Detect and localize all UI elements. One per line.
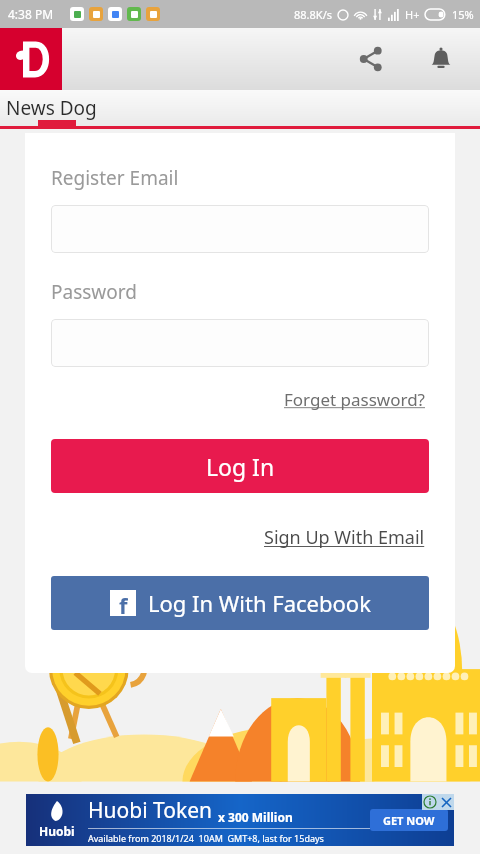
button[interactable]: Huobi [26,794,454,846]
staticText: GET NOW [383,813,435,828]
staticText: Password [51,279,137,305]
button[interactable]: Share [354,42,388,76]
button[interactable]: NewsDog home [0,28,62,90]
button[interactable]: Log In [51,439,429,493]
button[interactable]: Notifications [424,42,458,76]
staticText: H+ [405,7,420,22]
staticText: Log In [206,451,275,482]
button[interactable]: f [51,576,429,630]
button[interactable]: GET NOW [370,809,448,831]
staticText: Huobi [39,823,75,839]
button[interactable]: Ad info [422,794,438,810]
button[interactable]: News Dog [6,90,97,126]
staticText: 15% [452,7,474,22]
staticText: 88.8K/s [294,7,332,22]
button[interactable] [51,319,429,367]
staticText: Log In With Facebook [148,588,371,618]
staticText: Register Email [51,165,179,191]
staticText: 4:38 PM [8,6,54,22]
staticText: x 300 Million [218,809,293,825]
button[interactable]: Forget password? [280,384,429,415]
staticText: Forget password? [284,388,425,411]
staticText: Available from 2018/1/24 10AM GMT+8, las… [88,832,324,844]
staticText: News Dog [6,95,97,121]
button[interactable] [51,205,429,253]
staticText: Huobi Token [88,796,212,825]
button[interactable]: Close ad [438,794,454,810]
staticText: Sign Up With Email [264,525,425,550]
staticText: f [119,590,128,616]
button[interactable]: Sign Up With Email [260,521,429,554]
